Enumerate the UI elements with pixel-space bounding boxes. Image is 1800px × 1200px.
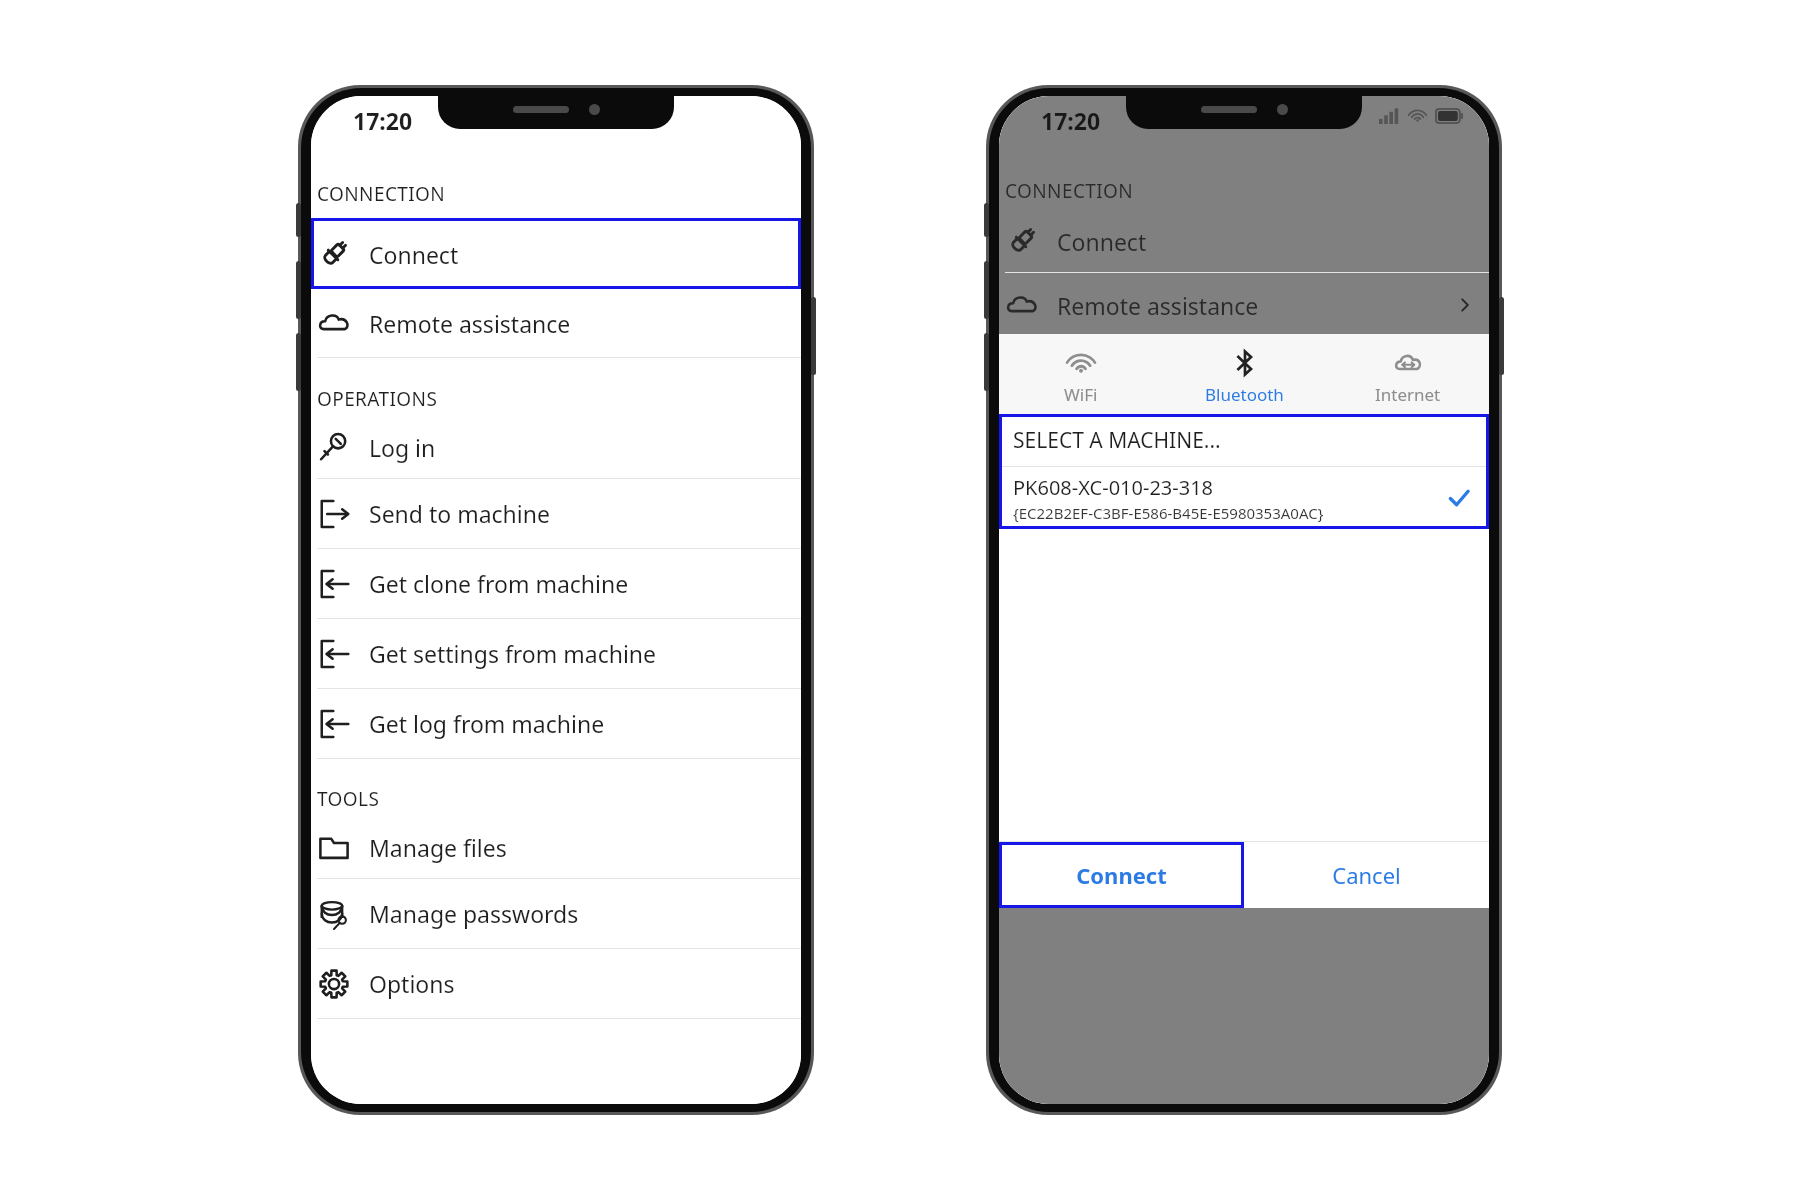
staticText: SELECT A MACHINE... xyxy=(1013,426,1221,455)
staticText: Connect xyxy=(1057,226,1147,257)
staticText: Bluetooth xyxy=(1205,383,1284,406)
button[interactable]: Bluetooth xyxy=(1163,340,1326,414)
button[interactable]: Get clone from machine xyxy=(311,549,801,618)
button[interactable]: WiFi xyxy=(999,340,1163,414)
button[interactable]: Options xyxy=(311,949,801,1018)
staticText: Get settings from machine xyxy=(369,638,657,669)
button[interactable]: Send to machine xyxy=(311,479,801,548)
staticText: Manage files xyxy=(369,832,507,863)
staticText: Options xyxy=(369,968,455,999)
staticText: Connect xyxy=(1076,860,1167,890)
staticText: PK608-XC-010-23-318 xyxy=(1013,474,1214,501)
staticText: Manage passwords xyxy=(369,898,579,929)
staticText: Log in xyxy=(369,432,436,463)
staticText: CONNECTION xyxy=(1005,178,1134,204)
button[interactable]: Connect xyxy=(999,842,1244,908)
staticText: 17:20 xyxy=(353,105,413,136)
button[interactable]: Remote assistance xyxy=(999,273,1489,337)
button[interactable]: Get log from machine xyxy=(311,689,801,758)
button[interactable]: Remote assistance xyxy=(311,289,801,357)
staticText: Remote assistance xyxy=(369,308,571,339)
button[interactable]: Connect xyxy=(999,210,1489,272)
button[interactable]: Internet xyxy=(1326,340,1489,414)
button[interactable]: Get settings from machine xyxy=(311,619,801,688)
staticText: Cancel xyxy=(1332,860,1401,890)
staticText: Remote assistance xyxy=(1057,290,1259,321)
button[interactable]: Manage files xyxy=(311,816,801,878)
staticText: TOOLS xyxy=(317,786,380,812)
staticText: CONNECTION xyxy=(317,181,446,207)
staticText: Connect xyxy=(369,239,459,270)
button[interactable]: Connect xyxy=(311,218,801,289)
staticText: OPERATIONS xyxy=(317,386,438,412)
staticText: 17:20 xyxy=(1041,105,1101,136)
button[interactable]: Cancel xyxy=(1244,842,1489,908)
staticText: Get log from machine xyxy=(369,708,605,739)
staticText: Internet xyxy=(1375,383,1441,406)
staticText: WiFi xyxy=(1064,383,1098,406)
staticText: {EC22B2EF-C3BF-E586-B45E-E5980353A0AC} xyxy=(1013,503,1324,523)
button[interactable]: Log in xyxy=(311,416,801,478)
staticText: Get clone from machine xyxy=(369,568,629,599)
staticText: Send to machine xyxy=(369,498,550,529)
button[interactable]: PK608-XC-010-23-318 xyxy=(999,467,1489,529)
button[interactable]: Manage passwords xyxy=(311,879,801,948)
